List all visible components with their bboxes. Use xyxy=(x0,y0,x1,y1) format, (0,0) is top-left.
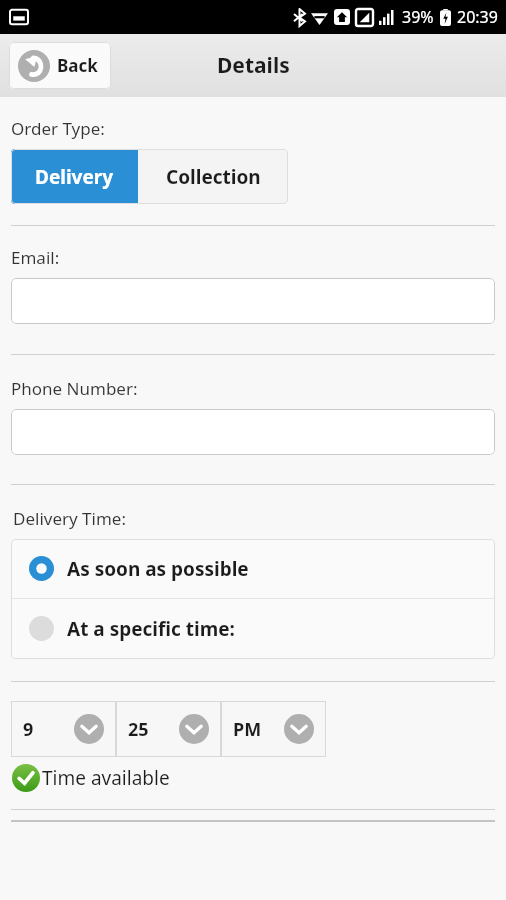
staticText: Email: xyxy=(11,246,60,269)
staticText: Phone Number: xyxy=(11,377,138,400)
staticText: As soon as possible xyxy=(67,556,249,582)
other: Open 25 dropdown xyxy=(179,714,209,744)
staticText: Details xyxy=(217,51,290,80)
button[interactable]: At a specific time: xyxy=(11,599,495,658)
staticText: Time available xyxy=(42,765,170,791)
button[interactable]: As soon as possible xyxy=(11,539,495,598)
button[interactable]: Delivery xyxy=(11,149,138,204)
button[interactable]: Back xyxy=(9,42,111,89)
staticText: At a specific time: xyxy=(67,616,235,642)
button[interactable]: 9 xyxy=(11,701,116,757)
staticText: 9 xyxy=(23,717,34,742)
button[interactable]: PM xyxy=(221,701,326,757)
button[interactable] xyxy=(11,409,495,455)
staticText: Back xyxy=(57,54,98,77)
staticText: 39% xyxy=(402,6,434,28)
button[interactable]: 25 xyxy=(116,701,221,757)
staticText: Delivery xyxy=(35,164,114,190)
staticText: Collection xyxy=(166,164,261,190)
staticText: Order Type: xyxy=(11,117,105,140)
staticText: PM xyxy=(233,717,262,742)
staticText: 20:39 xyxy=(457,6,498,28)
button[interactable] xyxy=(11,278,495,324)
staticText: Delivery Time: xyxy=(13,507,126,530)
button[interactable]: Collection xyxy=(138,149,288,204)
staticText: 25 xyxy=(128,717,149,742)
other: Open 9 dropdown xyxy=(74,714,104,744)
other: Open PM dropdown xyxy=(284,714,314,744)
